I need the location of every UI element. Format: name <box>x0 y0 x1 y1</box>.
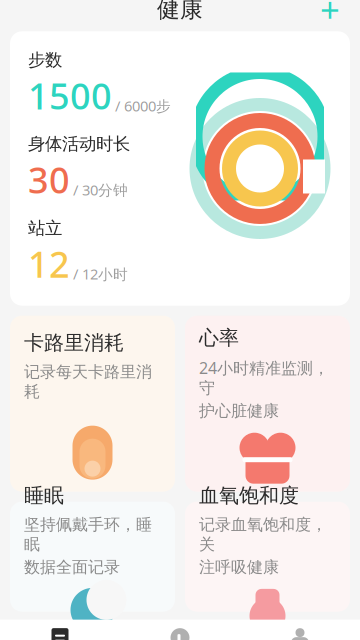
staticText: + <box>320 0 340 32</box>
staticText: 注呼吸健康 <box>199 557 279 577</box>
staticText: 30 <box>28 156 70 203</box>
staticText: 身体活动时长 <box>28 133 130 155</box>
staticText: 血氧饱和度 <box>199 483 299 508</box>
button[interactable]: 睡眠 <box>10 502 175 612</box>
button[interactable]: 血氧饱和度 <box>185 502 350 612</box>
button[interactable]: 我的 <box>240 620 360 640</box>
staticText: 健康 <box>157 0 203 23</box>
staticText: 卡路里消耗 <box>24 331 124 355</box>
staticText: 1500 <box>28 72 112 119</box>
staticText: / 12小时 <box>73 264 128 284</box>
staticText: 记录血氧饱和度，关 <box>199 515 327 554</box>
staticText: 步数 <box>28 49 62 71</box>
button[interactable]: 卡路里消耗 <box>10 316 175 492</box>
staticText: 24小时精准监测，守 <box>199 357 329 398</box>
staticText: 站立 <box>28 217 62 239</box>
staticText: / 30分钟 <box>73 180 128 200</box>
staticText: 护心脏健康 <box>199 401 279 421</box>
button[interactable]: 设备 <box>120 620 240 640</box>
button[interactable]: 健康 <box>0 620 120 640</box>
button[interactable]: Add <box>308 0 352 31</box>
button[interactable]: 心率 <box>185 316 350 492</box>
staticText: / 6000步 <box>115 96 171 115</box>
staticText: 睡眠 <box>24 483 64 508</box>
staticText: 数据全面记录 <box>24 557 120 577</box>
staticText: 坚持佩戴手环，睡眠 <box>24 515 152 554</box>
staticText: 12 <box>28 240 70 288</box>
staticText: 记录每天卡路里消耗 <box>24 362 152 401</box>
staticText: 心率 <box>199 326 239 350</box>
